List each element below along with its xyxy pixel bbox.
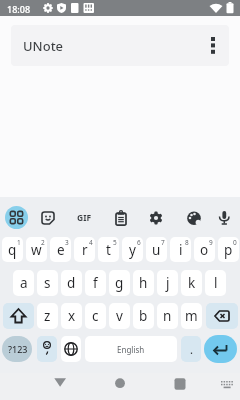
button[interactable] <box>206 303 238 329</box>
button[interactable]: b <box>133 303 154 329</box>
staticText: 2 <box>41 238 45 247</box>
button[interactable]: GIF <box>74 207 95 229</box>
button[interactable] <box>213 207 235 229</box>
button[interactable] <box>48 375 72 397</box>
staticText: i <box>179 241 183 259</box>
button[interactable]: r <box>74 237 95 262</box>
staticText: d <box>67 274 76 292</box>
staticText: 5 <box>113 238 117 247</box>
button[interactable]: v <box>109 303 130 329</box>
button[interactable]: y <box>122 237 143 262</box>
staticText: r <box>82 241 88 259</box>
button[interactable]: h <box>133 270 154 296</box>
staticText: 6 <box>137 238 141 247</box>
button[interactable] <box>183 207 205 229</box>
button[interactable]: p <box>218 237 239 262</box>
staticText: b <box>139 307 148 325</box>
staticText: 4 <box>89 238 93 247</box>
button[interactable] <box>5 206 28 229</box>
staticText: n <box>163 307 172 325</box>
staticText: h <box>139 274 148 292</box>
button[interactable]: g <box>109 270 130 296</box>
staticText: k <box>188 274 196 292</box>
button[interactable] <box>3 303 34 329</box>
staticText: 18:08 <box>7 3 31 15</box>
staticText: f <box>93 274 98 292</box>
staticText: . <box>190 342 193 357</box>
button[interactable] <box>145 207 167 229</box>
staticText: l <box>214 274 218 292</box>
button[interactable]: t <box>98 237 119 262</box>
button[interactable]: a <box>13 270 34 296</box>
staticText: w <box>31 241 42 259</box>
button[interactable]: d <box>61 270 82 296</box>
button[interactable] <box>204 335 237 363</box>
button[interactable]: u <box>146 237 167 262</box>
staticText: q <box>8 241 17 259</box>
staticText: p <box>224 241 233 259</box>
button[interactable]: l <box>205 270 226 296</box>
staticText: u <box>152 241 161 259</box>
button[interactable] <box>37 336 57 362</box>
staticText: 9 <box>209 238 213 247</box>
staticText: o <box>200 241 209 259</box>
staticText: 7 <box>161 238 165 247</box>
staticText: x <box>68 307 76 325</box>
button[interactable]: k <box>181 270 202 296</box>
staticText: GIF <box>77 212 92 224</box>
staticText: t <box>106 241 111 259</box>
button[interactable]: . <box>181 336 201 362</box>
staticText: English <box>117 344 145 355</box>
button[interactable]: o <box>194 237 215 262</box>
staticText: s <box>44 274 51 292</box>
staticText: UNote <box>23 37 64 55</box>
button[interactable]: n <box>157 303 178 329</box>
staticText: 1 <box>17 238 21 247</box>
staticText: y <box>129 241 136 259</box>
staticText: g <box>115 274 124 292</box>
button[interactable]: s <box>37 270 58 296</box>
staticText: j <box>166 274 170 292</box>
button[interactable]: w <box>26 237 47 262</box>
button[interactable] <box>169 375 191 397</box>
button[interactable] <box>215 375 239 397</box>
staticText: ?123 <box>8 343 28 355</box>
staticText: z <box>44 307 51 325</box>
staticText: 0 <box>233 238 237 247</box>
staticText: a <box>20 274 28 292</box>
staticText: 8 <box>185 238 189 247</box>
staticText: e <box>57 241 65 259</box>
button[interactable]: j <box>157 270 178 296</box>
staticText: m <box>185 307 198 325</box>
staticText: 3 <box>65 238 69 247</box>
button[interactable]: ?123 <box>2 336 32 362</box>
staticText: v <box>116 307 123 325</box>
button[interactable] <box>109 375 131 397</box>
button[interactable] <box>61 336 81 362</box>
button[interactable]: c <box>85 303 106 329</box>
button[interactable]: f <box>85 270 106 296</box>
button[interactable]: e <box>50 237 71 262</box>
button[interactable] <box>204 37 222 55</box>
button[interactable]: q <box>2 237 23 262</box>
button[interactable]: i <box>170 237 191 262</box>
button[interactable]: UNote <box>11 25 229 66</box>
staticText: c <box>92 307 99 325</box>
button[interactable]: x <box>61 303 82 329</box>
button[interactable]: m <box>181 303 202 329</box>
button[interactable]: English <box>85 336 177 362</box>
button[interactable] <box>37 207 59 229</box>
button[interactable] <box>110 207 132 229</box>
button[interactable]: z <box>37 303 58 329</box>
